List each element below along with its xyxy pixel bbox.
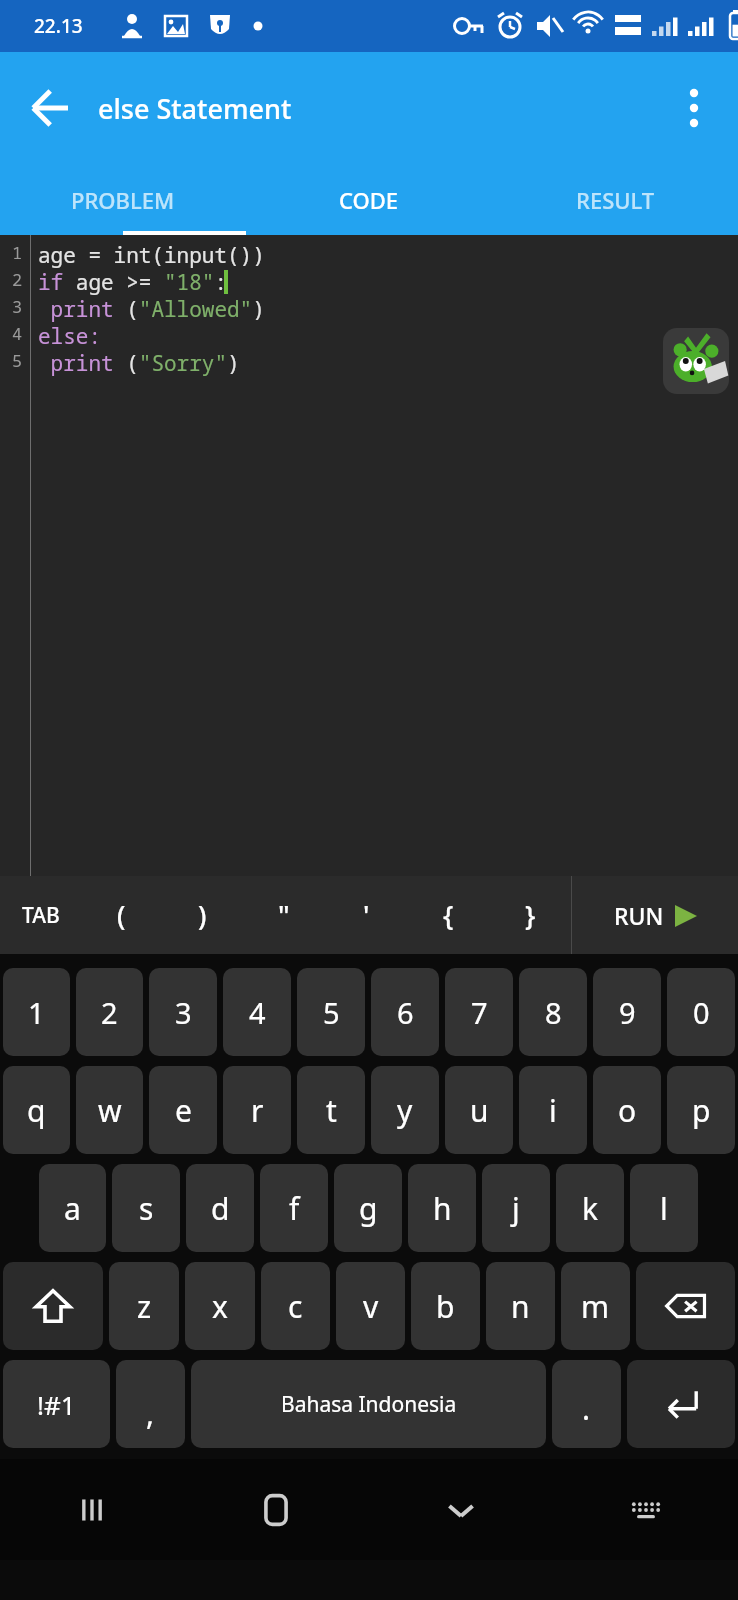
button[interactable]: Home — [184, 1459, 368, 1560]
button[interactable]: " — [243, 876, 325, 954]
button[interactable]: 2 — [76, 968, 143, 1056]
button[interactable]: w — [76, 1066, 143, 1154]
button[interactable]: 8 — [519, 968, 587, 1056]
button[interactable]: e — [149, 1066, 217, 1154]
button[interactable]: b — [411, 1262, 480, 1350]
button[interactable]: g — [334, 1164, 402, 1252]
button[interactable]: Recents — [0, 1459, 184, 1560]
staticText: else: — [38, 322, 101, 349]
button[interactable]: f — [260, 1164, 328, 1252]
button[interactable]: 5 — [297, 968, 365, 1056]
staticText: h — [433, 1188, 452, 1229]
button[interactable]: a — [39, 1164, 106, 1252]
staticText: !#1 — [37, 1387, 76, 1422]
button[interactable]: v — [336, 1262, 405, 1350]
button[interactable]: Backspace — [636, 1262, 735, 1350]
button[interactable]: d — [186, 1164, 254, 1252]
staticText: g — [359, 1188, 378, 1229]
button[interactable]: 4 — [223, 968, 291, 1056]
button[interactable]: q — [3, 1066, 70, 1154]
staticText: i — [549, 1090, 557, 1131]
button[interactable]: Shift — [3, 1262, 103, 1350]
staticText: 4 — [12, 322, 23, 345]
button[interactable]: App logo — [663, 328, 729, 394]
button[interactable]: o — [593, 1066, 661, 1154]
staticText: CODE — [339, 185, 399, 215]
staticText: 1 — [12, 241, 23, 264]
button[interactable]: t — [297, 1066, 365, 1154]
staticText: t — [326, 1090, 337, 1131]
staticText: a — [64, 1188, 81, 1229]
button[interactable]: 1 — [3, 968, 70, 1056]
staticText: l — [660, 1188, 668, 1229]
button[interactable]: } — [489, 876, 571, 954]
staticText: TAB — [22, 901, 60, 930]
button[interactable]: Hide keyboard — [368, 1459, 553, 1560]
button[interactable]: RUN — [572, 876, 738, 954]
button[interactable]: { — [407, 876, 489, 954]
button[interactable]: 0 — [667, 968, 735, 1056]
button[interactable]: 7 — [445, 968, 513, 1056]
staticText: 7 — [471, 993, 488, 1032]
button[interactable]: x — [185, 1262, 255, 1350]
staticText: x — [212, 1286, 228, 1327]
staticText: 5 — [12, 349, 23, 372]
staticText: Bahasa Indonesia — [281, 1390, 457, 1419]
button[interactable]: Back — [20, 78, 80, 138]
button[interactable]: n — [486, 1262, 555, 1350]
button[interactable]: 9 — [593, 968, 661, 1056]
staticText: c — [288, 1286, 303, 1327]
staticText: 8 — [545, 993, 562, 1032]
staticText: 3 — [175, 993, 192, 1032]
button[interactable]: 1 — [0, 235, 738, 876]
button[interactable]: , — [116, 1360, 185, 1448]
staticText: PROBLEM — [71, 185, 175, 215]
button[interactable]: h — [408, 1164, 476, 1252]
staticText: 2 — [101, 993, 118, 1032]
button[interactable]: Enter — [627, 1360, 735, 1448]
staticText: 1 — [28, 993, 45, 1032]
button[interactable]: Bahasa Indonesia — [191, 1360, 546, 1448]
button[interactable]: y — [371, 1066, 439, 1154]
button[interactable]: u — [445, 1066, 513, 1154]
staticText: f — [289, 1188, 300, 1229]
button[interactable]: PROBLEM — [0, 164, 246, 235]
button[interactable]: ' — [325, 876, 407, 954]
staticText: r — [251, 1090, 264, 1131]
button[interactable]: TAB — [0, 876, 81, 954]
button[interactable]: s — [112, 1164, 180, 1252]
staticText: n — [511, 1286, 530, 1327]
staticText: j — [512, 1188, 520, 1229]
button[interactable]: z — [109, 1262, 179, 1350]
staticText: w — [98, 1090, 122, 1131]
staticText: o — [618, 1090, 637, 1131]
button[interactable]: r — [223, 1066, 291, 1154]
button[interactable]: m — [561, 1262, 630, 1350]
button[interactable]: l — [630, 1164, 698, 1252]
button[interactable]: j — [482, 1164, 550, 1252]
staticText: 4 — [249, 993, 266, 1032]
staticText: ) — [198, 897, 207, 934]
staticText: u — [470, 1090, 489, 1131]
button[interactable]: . — [552, 1360, 621, 1448]
button[interactable]: k — [556, 1164, 624, 1252]
button[interactable]: p — [667, 1066, 735, 1154]
staticText: 3 — [12, 295, 23, 318]
staticText: else Statement — [98, 90, 292, 127]
button[interactable]: Switch keyboard — [553, 1459, 738, 1560]
button[interactable]: 3 — [149, 968, 217, 1056]
staticText: if age >= "18": — [38, 268, 227, 295]
staticText: print ("Allowed") — [38, 295, 265, 322]
button[interactable]: More options — [664, 78, 724, 138]
button[interactable]: ) — [162, 876, 243, 954]
staticText: print ("Sorry") — [38, 349, 240, 376]
button[interactable]: c — [261, 1262, 330, 1350]
button[interactable]: ( — [81, 876, 162, 954]
button[interactable]: !#1 — [3, 1360, 110, 1448]
button[interactable]: CODE — [246, 164, 492, 235]
button[interactable]: 6 — [371, 968, 439, 1056]
staticText: v — [363, 1286, 379, 1327]
staticText: , — [146, 1393, 155, 1434]
button[interactable]: i — [519, 1066, 587, 1154]
button[interactable]: RESULT — [492, 164, 738, 235]
